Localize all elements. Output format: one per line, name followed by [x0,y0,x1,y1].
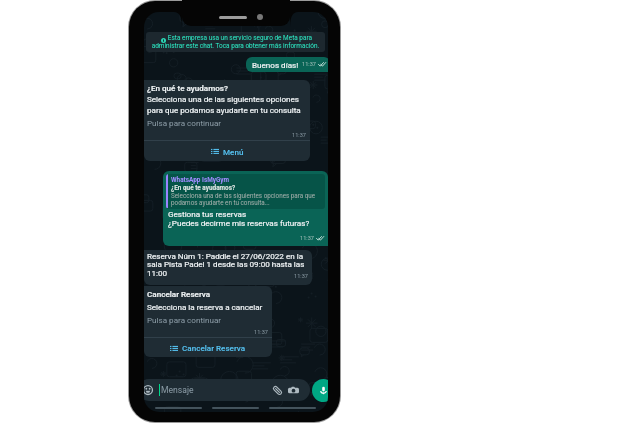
staticText: 11:37 [292,132,306,139]
staticText: Buenos días! [252,60,299,69]
staticText: 11:37 [302,61,316,68]
staticText: Cancelar Reserva [182,343,246,352]
staticText: Selecciona una de las siguientes opcione… [171,192,325,207]
staticText: ¿En qué te ayudamos? [147,83,228,92]
staticText: Reserva Núm 1: Paddle el 27/06/2022 en l… [147,251,308,278]
button[interactable]: Atrás [155,407,202,409]
other: Emoji [144,385,153,395]
staticText: 11:37 [254,329,268,336]
staticText: WhatsApp IsMyGym [171,176,230,184]
staticText: Selecciona una de las siguientes opcione… [147,94,306,115]
staticText: Menú [223,147,244,156]
staticText: Esta empresa usa un servicio seguro de M… [151,34,320,50]
other: Cámara [288,385,299,396]
button[interactable]: Reserva Núm 1: Paddle el 27/06/2022 en l… [144,250,312,285]
button[interactable]: Recientes [269,407,316,409]
button[interactable]: Buenos días! [246,57,328,72]
staticText: 11:37 [300,235,314,242]
button[interactable]: Grabar mensaje de voz [312,379,328,402]
staticText: Gestiona tus reservas [168,209,247,218]
staticText: Pulsa para continuar [147,315,222,324]
staticText: Cancelar Reserva [147,289,211,298]
staticText: Pulsa para continuar [147,118,222,127]
staticText: Mensaje [161,385,194,395]
staticText: Selecciona la reserva a cancelar [147,302,263,311]
button[interactable]: Menú [144,141,310,161]
staticText: ¿En qué te ayudamos? [171,184,236,192]
button[interactable]: Emoji [144,379,310,401]
button[interactable]: Esta empresa usa un servicio seguro de M… [146,32,325,52]
button[interactable]: Cancelar Reserva [144,338,272,357]
staticText: ¿Puedes decirme mis reservas futuras? [168,218,310,227]
other: Adjuntar [272,385,283,396]
staticText: 11:37 [294,273,308,280]
button[interactable]: Inicio [212,407,259,409]
other: Información [161,38,166,43]
button[interactable]: WhatsApp IsMyGym [163,171,328,246]
